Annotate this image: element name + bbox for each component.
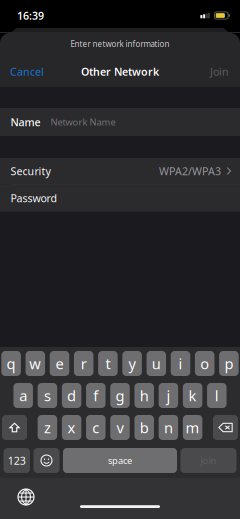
- staticText: 16:39: [17, 8, 44, 23]
- staticText: c: [92, 418, 99, 437]
- staticText: Network Name: [50, 116, 115, 128]
- button[interactable]: z: [38, 415, 57, 440]
- button[interactable]: x: [62, 415, 81, 440]
- staticText: e: [55, 354, 63, 373]
- button[interactable]: r: [74, 351, 93, 376]
- staticText: g: [115, 386, 124, 405]
- staticText: Name: [10, 115, 40, 129]
- button[interactable]: q: [1, 351, 21, 376]
- staticText: Other Network: [81, 64, 159, 79]
- staticText: Password: [10, 191, 57, 205]
- staticText: k: [189, 386, 197, 405]
- staticText: Cancel: [10, 64, 44, 79]
- button[interactable]: d: [62, 383, 81, 408]
- staticText: b: [140, 418, 149, 437]
- staticText: m: [186, 418, 200, 437]
- button[interactable]: s: [38, 383, 57, 408]
- button[interactable]: w: [25, 351, 45, 376]
- button[interactable]: f: [86, 383, 105, 408]
- button[interactable]: b: [134, 415, 154, 440]
- button[interactable]: 123: [3, 448, 30, 473]
- staticText: f: [93, 386, 98, 405]
- button[interactable]: k: [183, 383, 202, 408]
- staticText: x: [68, 418, 76, 437]
- staticText: r: [81, 354, 87, 373]
- button[interactable]: g: [110, 383, 130, 408]
- staticText: v: [116, 418, 123, 437]
- button[interactable]: i: [171, 351, 190, 376]
- button[interactable]: c: [86, 415, 106, 440]
- staticText: u: [152, 354, 161, 373]
- button[interactable]: p: [219, 351, 239, 376]
- staticText: j: [166, 386, 170, 405]
- button[interactable]: Cancel: [0, 56, 58, 87]
- button[interactable]: join: [180, 448, 236, 473]
- button[interactable]: Shift: [2, 415, 27, 440]
- staticText: t: [105, 354, 110, 373]
- staticText: h: [140, 386, 149, 405]
- button[interactable]: m: [183, 415, 202, 440]
- button[interactable]: v: [110, 415, 130, 440]
- staticText: 123: [8, 453, 26, 468]
- staticText: WPA2/WPA3: [159, 164, 221, 178]
- staticText: Enter network information: [70, 39, 169, 49]
- button[interactable]: Join: [182, 56, 240, 87]
- staticText: s: [44, 386, 51, 405]
- button[interactable]: space: [63, 448, 177, 473]
- button[interactable]: Delete: [213, 415, 238, 440]
- staticText: i: [178, 354, 182, 373]
- button[interactable]: h: [134, 383, 154, 408]
- staticText: w: [29, 354, 41, 373]
- button[interactable]: Next keyboard: [11, 486, 41, 508]
- staticText: n: [164, 418, 173, 437]
- staticText: q: [7, 354, 16, 373]
- button[interactable]: Emoji: [33, 448, 59, 473]
- button[interactable]: n: [159, 415, 178, 440]
- staticText: Security: [10, 164, 50, 178]
- button[interactable]: y: [122, 351, 142, 376]
- button[interactable]: a: [13, 383, 33, 408]
- button[interactable]: t: [98, 351, 118, 376]
- button[interactable]: o: [195, 351, 214, 376]
- staticText: l: [215, 386, 219, 405]
- staticText: space: [108, 454, 132, 467]
- button[interactable]: e: [50, 351, 69, 376]
- staticText: Join: [210, 64, 229, 79]
- staticText: join: [200, 454, 216, 467]
- button[interactable]: l: [207, 383, 226, 408]
- staticText: o: [200, 354, 209, 373]
- button[interactable]: u: [146, 351, 166, 376]
- button[interactable]: j: [159, 383, 178, 408]
- staticText: d: [67, 386, 76, 405]
- staticText: y: [129, 354, 136, 373]
- staticText: p: [224, 354, 233, 373]
- staticText: z: [44, 418, 51, 437]
- staticText: a: [19, 386, 27, 405]
- button[interactable]: Security: [0, 158, 240, 184]
